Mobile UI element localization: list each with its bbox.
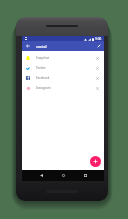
button[interactable]: Remove Twitter (91, 63, 104, 73)
button[interactable]: Instagram (22, 83, 104, 93)
staticText: Snapchat (36, 56, 93, 60)
staticText: Instagram (36, 86, 93, 90)
button[interactable]: Twitter (22, 63, 104, 73)
button[interactable]: Facebook (22, 73, 104, 83)
staticText: social (36, 44, 47, 49)
button[interactable]: Remove Instagram (91, 83, 104, 93)
button[interactable]: Home (52, 170, 74, 181)
button[interactable]: Snapchat (22, 53, 104, 63)
staticText: Facebook (36, 76, 93, 80)
button[interactable]: Recents (74, 170, 96, 181)
button[interactable]: Remove Facebook (91, 73, 104, 83)
button[interactable]: Back (22, 41, 33, 51)
staticText: 9:06 (95, 37, 102, 41)
button[interactable]: Back (30, 170, 52, 181)
button[interactable]: Add (90, 156, 101, 167)
staticText: Twitter (36, 66, 93, 70)
button[interactable]: Edit (93, 41, 104, 51)
button[interactable]: Remove Snapchat (91, 53, 104, 63)
